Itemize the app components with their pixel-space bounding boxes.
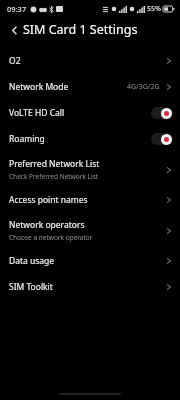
button[interactable]: VoLTE HD Call <box>0 100 180 126</box>
button[interactable]: Preferred Network List <box>0 152 180 187</box>
staticText: 4G/3G/2G <box>127 82 160 92</box>
button[interactable]: Access point names <box>0 187 180 213</box>
staticText: VoLTE HD Call <box>9 107 151 119</box>
button[interactable]: Back <box>7 23 21 37</box>
button[interactable]: Toggle <box>151 133 173 145</box>
button[interactable]: SIM Toolkit <box>0 274 180 300</box>
button[interactable]: Data usage <box>0 248 180 274</box>
button[interactable]: O2 <box>0 48 180 74</box>
staticText: SIM Card 1 Settings <box>23 21 138 38</box>
button[interactable]: Network Mode <box>0 74 180 100</box>
staticText: Choose a network operator <box>9 233 93 242</box>
staticText: 09:37 <box>7 4 27 14</box>
button[interactable]: Roaming <box>0 126 180 152</box>
button[interactable]: Toggle <box>151 107 173 119</box>
staticText: Network operators <box>9 219 85 231</box>
button[interactable]: Network operators <box>0 213 180 248</box>
staticText: O2 <box>9 55 21 67</box>
staticText: Roaming <box>9 133 151 145</box>
staticText: Check Preferred Network List <box>9 172 99 181</box>
staticText: SIM Toolkit <box>9 281 53 293</box>
staticText: Data usage <box>9 255 55 267</box>
staticText: Preferred Network List <box>9 158 100 170</box>
staticText: Access point names <box>9 194 88 206</box>
staticText: Network Mode <box>9 81 69 93</box>
staticText: 55% <box>147 4 161 14</box>
